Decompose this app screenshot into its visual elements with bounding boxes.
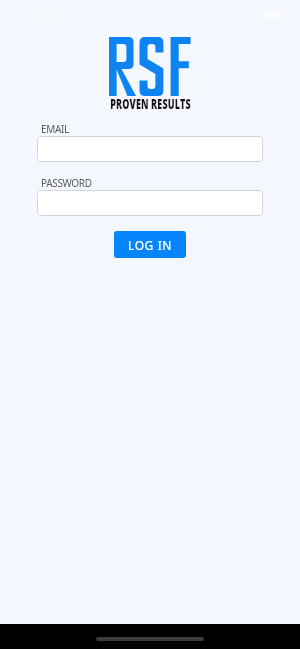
staticText: PROVEN RESULTS [110,94,191,113]
staticText: EMAIL [41,122,69,136]
staticText: LOG IN [128,237,173,253]
button[interactable]: Email input [37,136,263,162]
staticText: PASSWORD [41,176,92,190]
button[interactable]: LOG IN [114,231,186,258]
button[interactable]: Password input [37,190,263,216]
